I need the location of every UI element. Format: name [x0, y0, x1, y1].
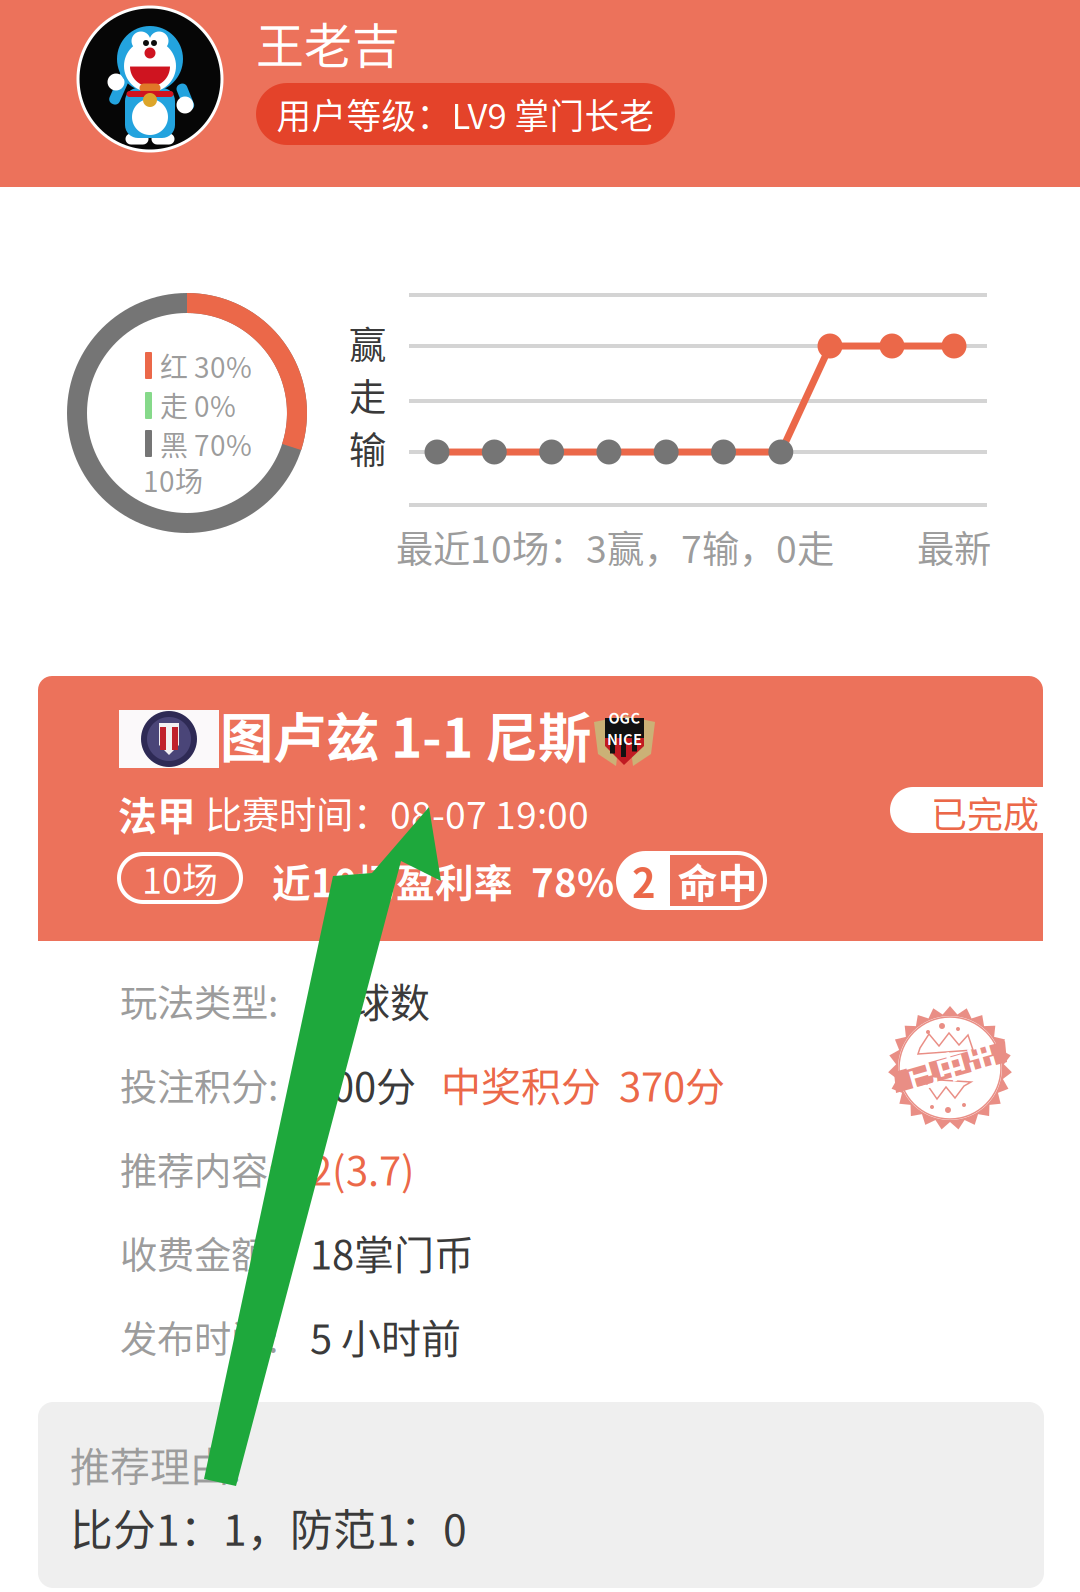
staticText: 最新	[917, 520, 991, 574]
staticText: 发布时间:	[120, 1310, 278, 1364]
staticText: 用户等级：LV9 掌门长老	[276, 89, 654, 139]
staticText: 黑 70%	[160, 424, 252, 464]
staticText: 比赛时间：08-07 19:00	[205, 786, 589, 840]
staticText: 最近10场：3赢，7输，0走	[396, 520, 834, 574]
staticText: NICE	[607, 728, 642, 749]
staticText: 10场	[143, 460, 203, 500]
staticText: 5 小时前	[310, 1307, 461, 1365]
staticText: 18掌门币	[310, 1223, 474, 1281]
staticText: 收费金额:	[120, 1226, 278, 1280]
staticText: 比分1：1，防范1：0	[70, 1496, 467, 1558]
staticText: 进球数	[310, 971, 430, 1029]
staticText: OGC	[608, 707, 640, 728]
staticText: 推荐理由:	[70, 1435, 241, 1493]
staticText: 王老吉	[256, 8, 400, 77]
staticText: 图卢兹 1-1 尼斯	[220, 696, 591, 773]
staticText: 2(3.7)	[310, 1139, 415, 1197]
staticText: 2	[632, 851, 656, 909]
button[interactable]: 用户等级：LV9 掌门长老	[256, 83, 675, 145]
staticText: 走	[349, 368, 386, 422]
staticText: 中奖积分 370分	[441, 1055, 725, 1113]
staticText: 已中出	[904, 1043, 997, 1087]
staticText: 输	[349, 421, 386, 475]
staticText: 命中	[677, 851, 757, 909]
staticText: 投注积分:	[120, 1058, 278, 1112]
staticText: 近10场盈利率 78%	[272, 852, 614, 908]
staticText: 法甲	[118, 785, 196, 841]
button[interactable]: 用户头像	[78, 7, 222, 151]
staticText: 已完成	[931, 786, 1039, 838]
staticText: 红 30%	[160, 346, 252, 386]
staticText: 玩法类型:	[120, 974, 278, 1028]
staticText: 100分	[310, 1055, 416, 1113]
staticText: 走 0%	[160, 385, 236, 425]
staticText: 10场	[142, 852, 218, 904]
staticText: 赢	[349, 316, 386, 370]
button[interactable]: 已完成	[890, 787, 1043, 833]
staticText: 推荐内容:	[120, 1142, 278, 1196]
